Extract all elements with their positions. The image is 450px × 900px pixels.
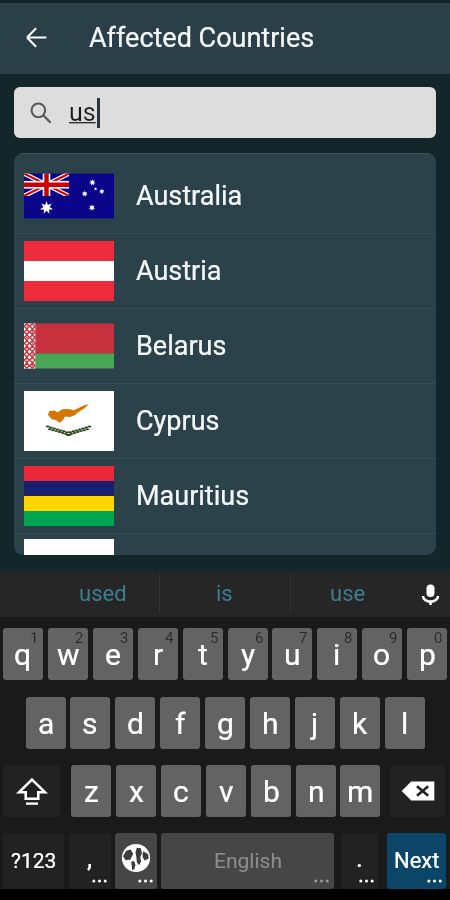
button[interactable]: Mauritius bbox=[14, 459, 436, 533]
staticText: v bbox=[219, 774, 234, 809]
button[interactable]: a bbox=[26, 697, 66, 749]
staticText: 7 bbox=[299, 629, 308, 647]
button[interactable]: j bbox=[295, 697, 335, 749]
button[interactable]: h bbox=[250, 697, 290, 749]
button[interactable]: u bbox=[272, 628, 312, 680]
button[interactable]: o bbox=[362, 628, 402, 680]
staticText: e bbox=[105, 637, 121, 672]
button[interactable]: Belarus bbox=[14, 309, 436, 383]
button[interactable]: Change language bbox=[115, 833, 157, 889]
staticText: k bbox=[352, 706, 368, 741]
button[interactable]: q bbox=[3, 628, 43, 680]
button[interactable]: p bbox=[407, 628, 447, 680]
staticText: s bbox=[82, 706, 98, 741]
staticText: x bbox=[129, 774, 144, 809]
staticText: q bbox=[14, 637, 32, 672]
button[interactable]: ?123 bbox=[3, 833, 64, 889]
staticText: 2 bbox=[75, 629, 84, 647]
button[interactable]: k bbox=[340, 697, 380, 749]
staticText: use bbox=[330, 581, 366, 607]
staticText: . bbox=[356, 843, 363, 873]
button[interactable]: us bbox=[14, 87, 436, 138]
button[interactable]: b bbox=[251, 765, 291, 817]
staticText: Belarus bbox=[136, 330, 227, 362]
staticText: a bbox=[38, 706, 55, 741]
staticText: 4 bbox=[165, 629, 174, 647]
staticText: 6 bbox=[255, 629, 264, 647]
staticText: j bbox=[311, 706, 319, 741]
button[interactable]: Space bbox=[161, 833, 334, 889]
button[interactable]: use bbox=[291, 571, 417, 617]
staticText: t bbox=[198, 637, 208, 672]
button[interactable]: f bbox=[160, 697, 200, 749]
staticText: Cyprus bbox=[136, 405, 220, 437]
button[interactable]: n bbox=[296, 765, 336, 817]
button[interactable]: is bbox=[160, 571, 290, 617]
button[interactable]: z bbox=[71, 765, 111, 817]
staticText: p bbox=[419, 637, 436, 672]
staticText: f bbox=[175, 706, 186, 741]
button[interactable]: Cyprus bbox=[14, 384, 436, 458]
button[interactable]: Backspace bbox=[390, 765, 445, 817]
button[interactable]: Australia bbox=[14, 159, 436, 233]
button[interactable]: , bbox=[69, 833, 111, 889]
button[interactable]: d bbox=[115, 697, 155, 749]
staticText: m bbox=[347, 774, 374, 809]
button[interactable]: v bbox=[206, 765, 246, 817]
staticText: Austria bbox=[136, 255, 222, 287]
staticText: d bbox=[127, 706, 144, 741]
staticText: n bbox=[308, 774, 325, 809]
staticText: y bbox=[241, 637, 256, 672]
staticText: i bbox=[333, 637, 341, 672]
button[interactable]: Voice input bbox=[411, 571, 450, 617]
staticText: 9 bbox=[389, 629, 398, 647]
staticText: w bbox=[57, 637, 80, 672]
staticText: r bbox=[153, 637, 164, 672]
button[interactable]: y bbox=[228, 628, 268, 680]
staticText: English bbox=[214, 849, 282, 874]
staticText: 8 bbox=[344, 629, 353, 647]
staticText: us bbox=[69, 98, 96, 127]
button[interactable]: t bbox=[183, 628, 223, 680]
button[interactable]: e bbox=[93, 628, 133, 680]
staticText: b bbox=[263, 774, 280, 809]
staticText: 3 bbox=[120, 629, 129, 647]
button[interactable]: s bbox=[70, 697, 110, 749]
staticText: 1 bbox=[30, 629, 39, 647]
button[interactable]: m bbox=[340, 765, 380, 817]
staticText: , bbox=[87, 843, 93, 873]
staticText: l bbox=[401, 706, 409, 741]
staticText: Affected Countries bbox=[89, 22, 315, 54]
button[interactable] bbox=[14, 534, 436, 555]
staticText: o bbox=[373, 637, 391, 672]
button[interactable]: Next bbox=[387, 833, 446, 889]
staticText: z bbox=[84, 774, 99, 809]
button[interactable]: Austria bbox=[14, 234, 436, 308]
staticText: ?123 bbox=[11, 849, 57, 874]
button[interactable]: l bbox=[385, 697, 425, 749]
staticText: h bbox=[262, 706, 279, 741]
button[interactable]: c bbox=[161, 765, 201, 817]
button[interactable]: . bbox=[341, 833, 378, 889]
button[interactable]: Back bbox=[14, 17, 58, 61]
staticText: used bbox=[79, 581, 127, 607]
staticText: c bbox=[173, 774, 189, 809]
staticText: Mauritius bbox=[136, 480, 250, 512]
staticText: g bbox=[217, 706, 234, 741]
staticText: 5 bbox=[210, 629, 219, 647]
button[interactable]: i bbox=[317, 628, 357, 680]
button[interactable]: used bbox=[0, 571, 159, 617]
staticText: 0 bbox=[434, 629, 443, 647]
staticText: is bbox=[216, 581, 233, 607]
button[interactable]: x bbox=[116, 765, 156, 817]
staticText: Next bbox=[394, 848, 440, 874]
button[interactable]: w bbox=[48, 628, 88, 680]
staticText: u bbox=[284, 637, 301, 672]
button[interactable]: g bbox=[205, 697, 245, 749]
staticText: Australia bbox=[136, 180, 243, 212]
button[interactable]: r bbox=[138, 628, 178, 680]
button[interactable]: Shift bbox=[3, 765, 60, 817]
